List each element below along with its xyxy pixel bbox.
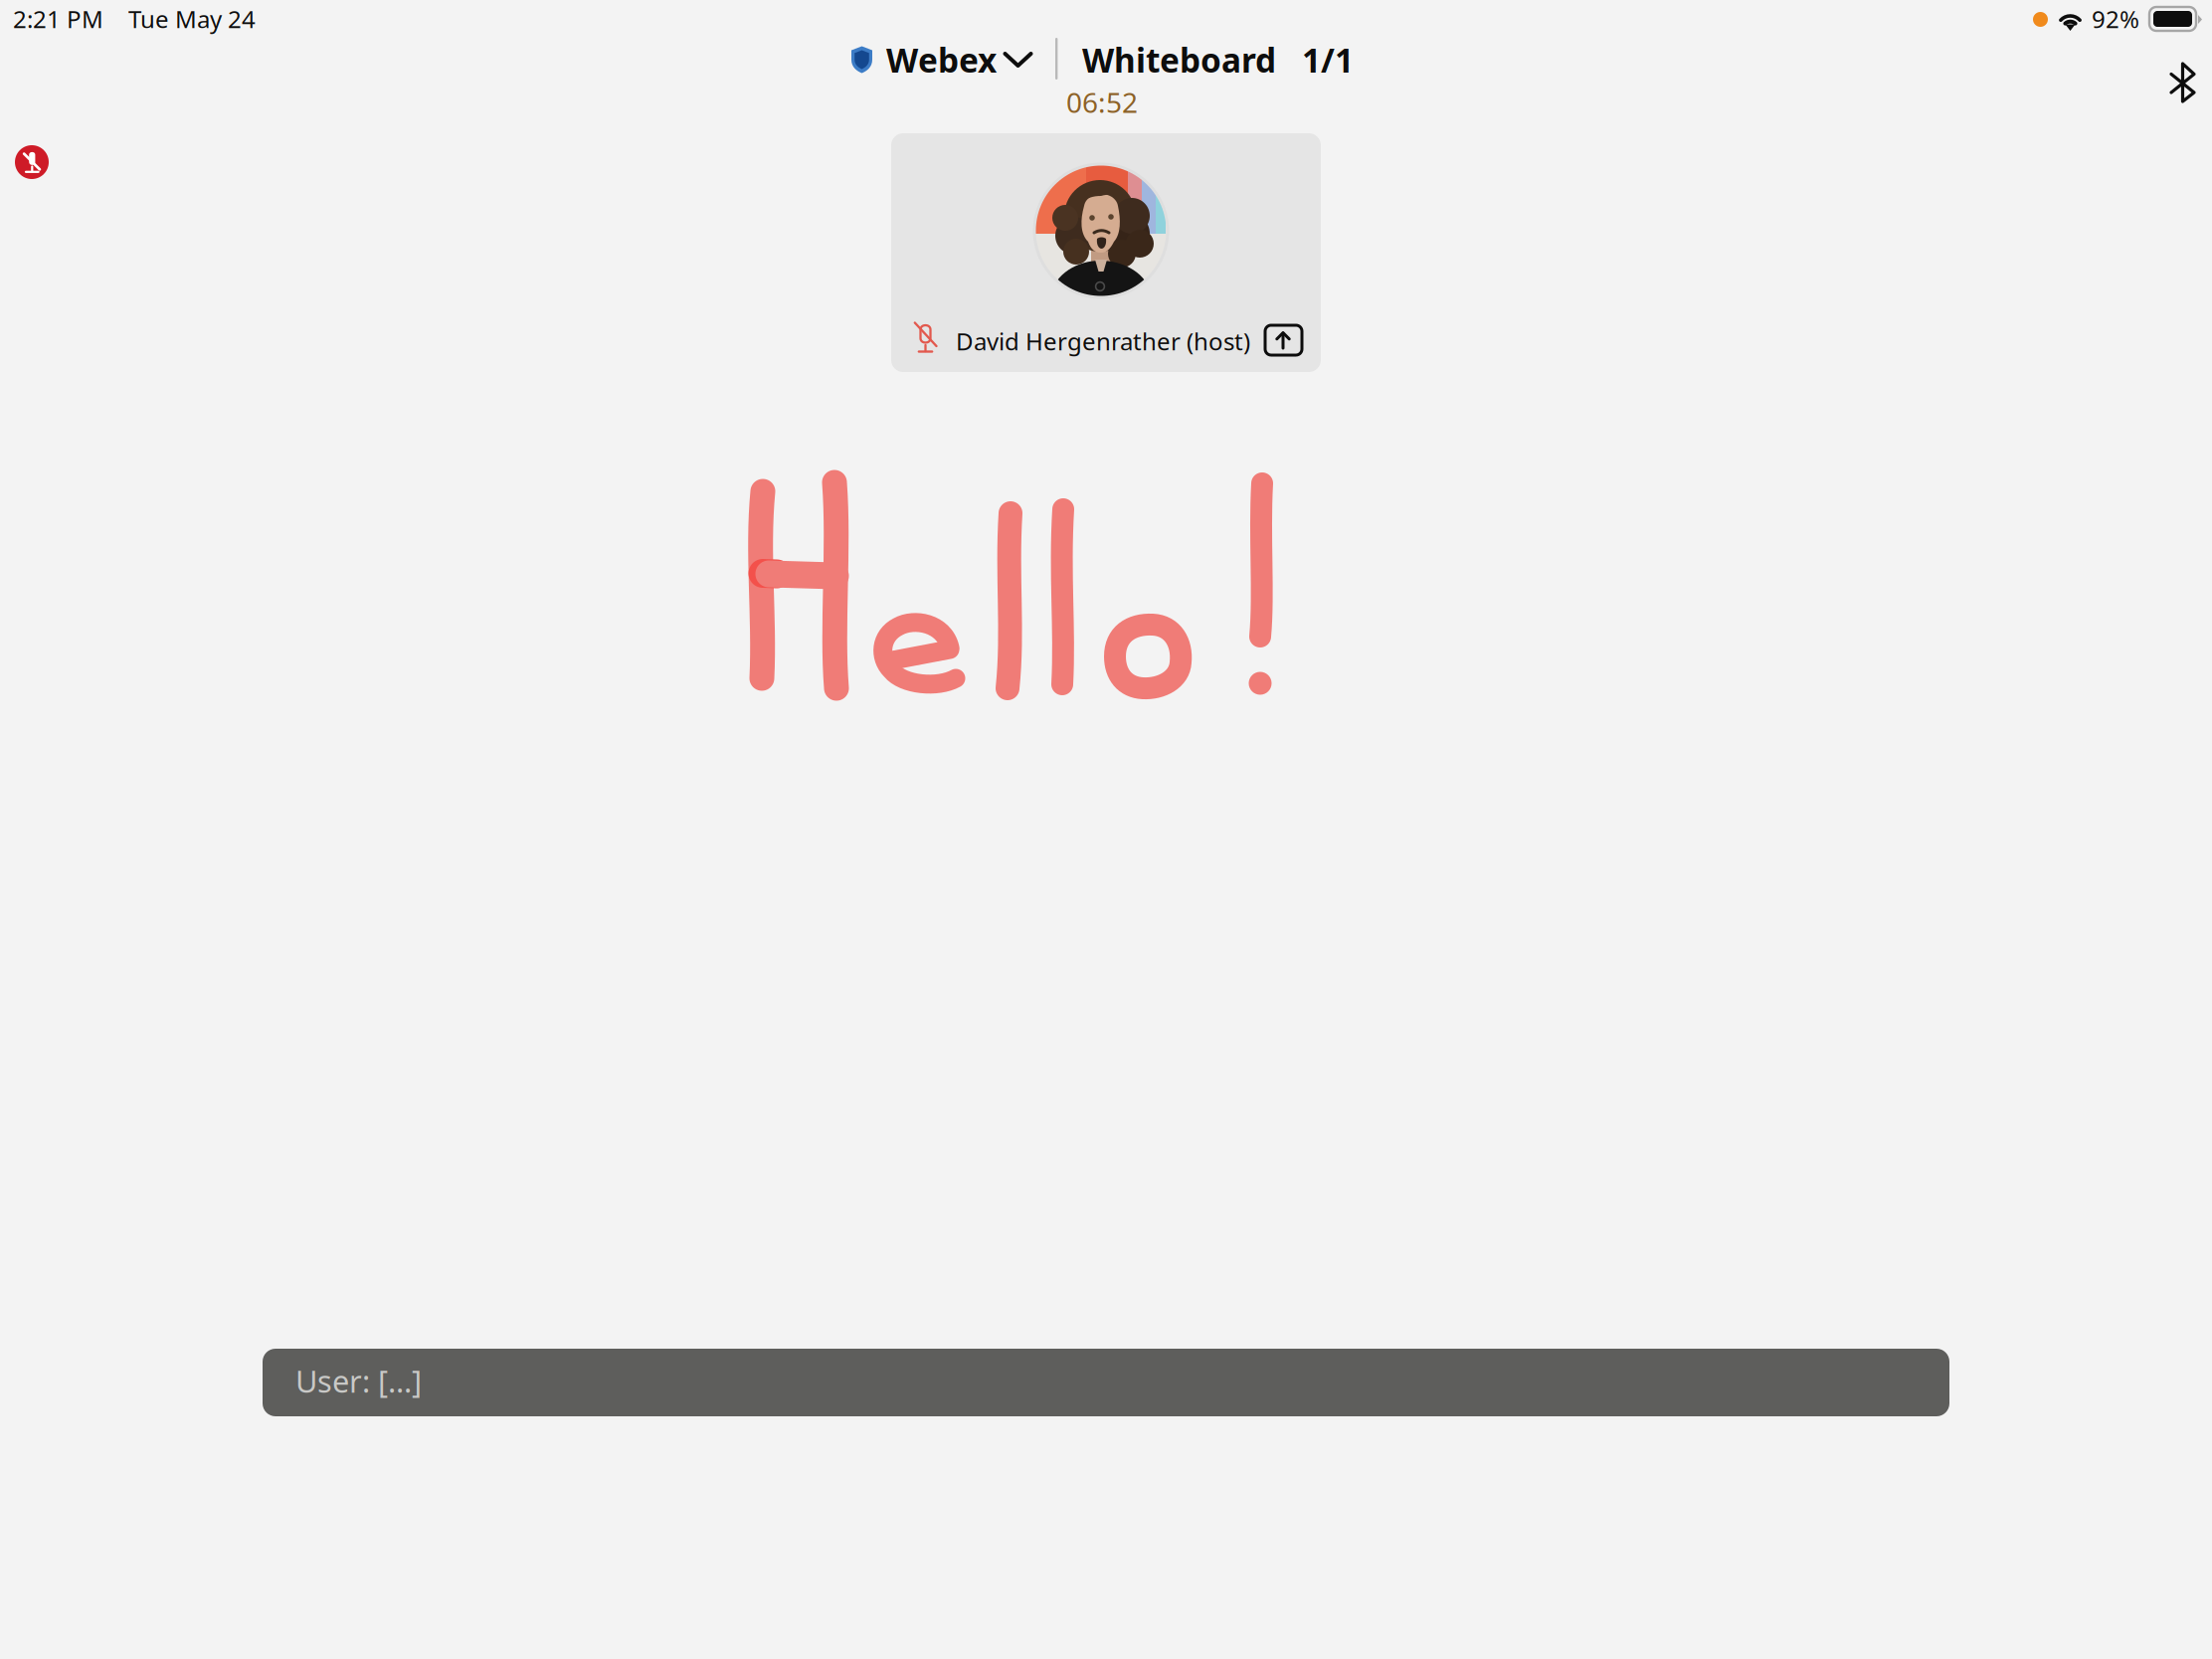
staticText: David Hergenrather (host) xyxy=(956,325,1250,357)
button[interactable]: Expand participant xyxy=(1265,325,1302,355)
staticText: User: [...] xyxy=(295,1361,422,1401)
button[interactable]: Webex xyxy=(850,41,1033,79)
button[interactable]: David Hergenrather, host xyxy=(891,133,1321,372)
staticText: Tue May 24 xyxy=(128,3,256,35)
staticText: Webex xyxy=(886,38,997,82)
button[interactable]: Whiteboard xyxy=(1082,41,1354,79)
button[interactable]: Bluetooth xyxy=(2168,62,2198,104)
staticText: 92% xyxy=(2092,3,2139,35)
staticText: 1/1 xyxy=(1302,38,1354,82)
staticText: 06:52 xyxy=(1066,84,1138,121)
staticText: Whiteboard xyxy=(1082,38,1276,82)
staticText: 2:21 PM xyxy=(13,3,103,35)
button[interactable]: Microphone muted xyxy=(15,145,49,179)
